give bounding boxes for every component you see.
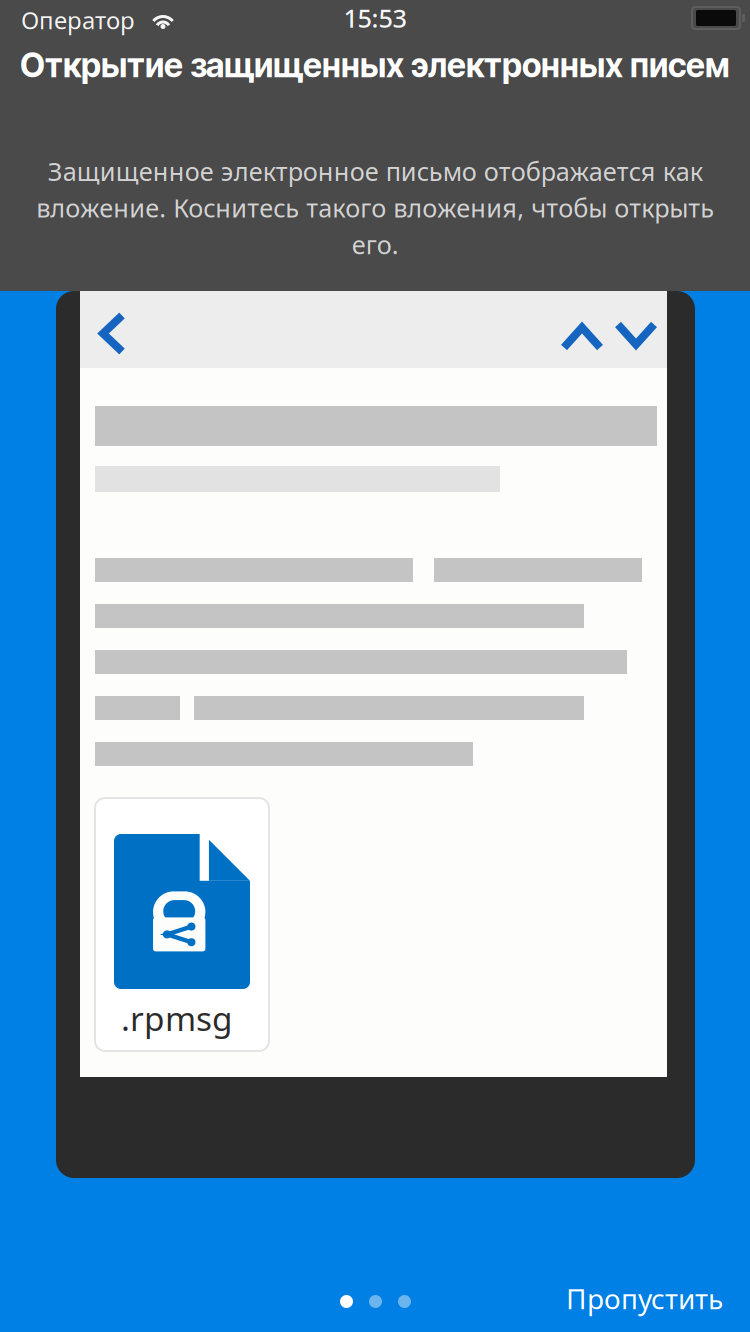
button[interactable]: Previous message xyxy=(551,293,607,365)
button[interactable]: Next message xyxy=(607,293,663,365)
staticText: Открытие защищенных электронных писем xyxy=(20,45,730,85)
button[interactable]: Back xyxy=(80,291,136,367)
staticText: Пропустить xyxy=(566,1280,723,1317)
button[interactable]: Open .rpmsg attachment xyxy=(95,798,269,1051)
staticText: Оператор xyxy=(21,4,135,36)
staticText: Защищенное электронное письмо отображает… xyxy=(36,154,714,261)
staticText: 15:53 xyxy=(343,1,406,35)
button[interactable]: Пропустить xyxy=(552,1262,737,1327)
staticText: .rpmsg xyxy=(121,996,233,1040)
